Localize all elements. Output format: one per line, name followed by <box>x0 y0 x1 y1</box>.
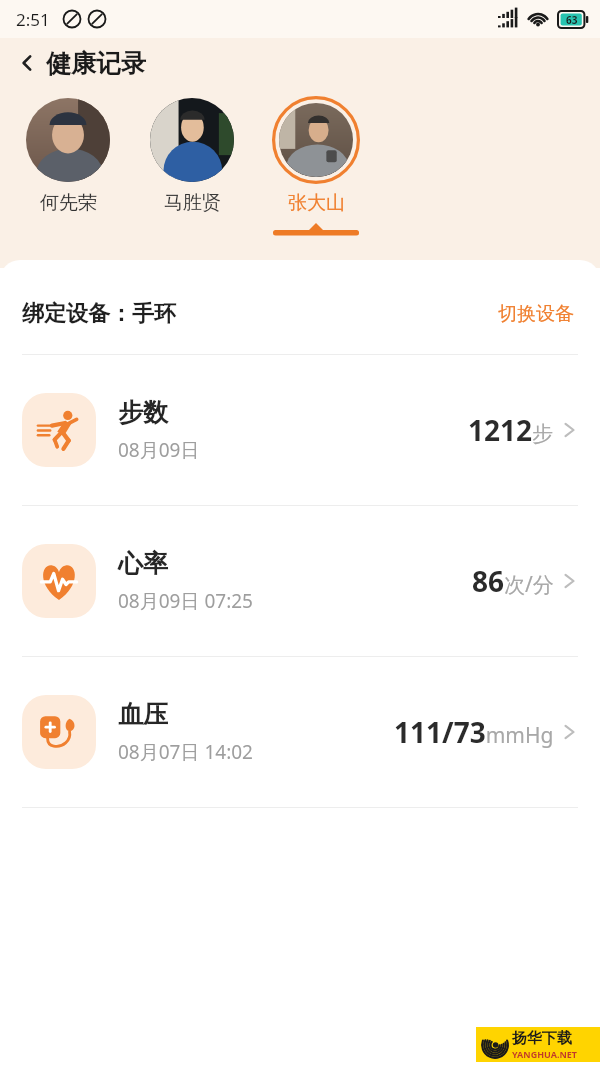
button[interactable]: 心率 <box>0 506 600 656</box>
staticText: 马胜贤 <box>164 191 221 215</box>
staticText: 1212步 <box>468 411 554 449</box>
staticText: 步数 <box>118 397 168 428</box>
button[interactable]: 马胜贤 <box>146 96 238 236</box>
staticText: 绑定设备：手环 <box>22 300 176 328</box>
staticText: YANGHUA.NET <box>512 1048 578 1060</box>
staticText: 08月09日 07:25 <box>118 588 253 614</box>
staticText: 86次/分 <box>472 562 554 600</box>
button[interactable]: 切换设备 <box>494 298 578 330</box>
staticText: 切换设备 <box>498 302 574 326</box>
staticText: 扬华下载 <box>512 1029 572 1048</box>
staticText: 08月07日 14:02 <box>118 739 253 765</box>
staticText: 111/73mmHg <box>394 713 554 751</box>
button[interactable]: 何先荣 <box>22 96 114 236</box>
staticText: 健康记录 <box>46 48 146 79</box>
staticText: 心率 <box>118 548 168 579</box>
staticText: 血压 <box>118 699 168 730</box>
button[interactable]: 血压 <box>0 657 600 807</box>
staticText: 2:51 <box>16 8 50 31</box>
staticText: 08月09日 <box>118 437 200 463</box>
button[interactable]: 步数 <box>0 355 600 505</box>
staticText: 何先荣 <box>40 191 97 215</box>
button[interactable]: 返回 <box>10 46 44 80</box>
button[interactable]: 张大山 <box>270 96 362 236</box>
staticText: 张大山 <box>288 191 345 215</box>
staticText: 63 <box>566 13 578 27</box>
